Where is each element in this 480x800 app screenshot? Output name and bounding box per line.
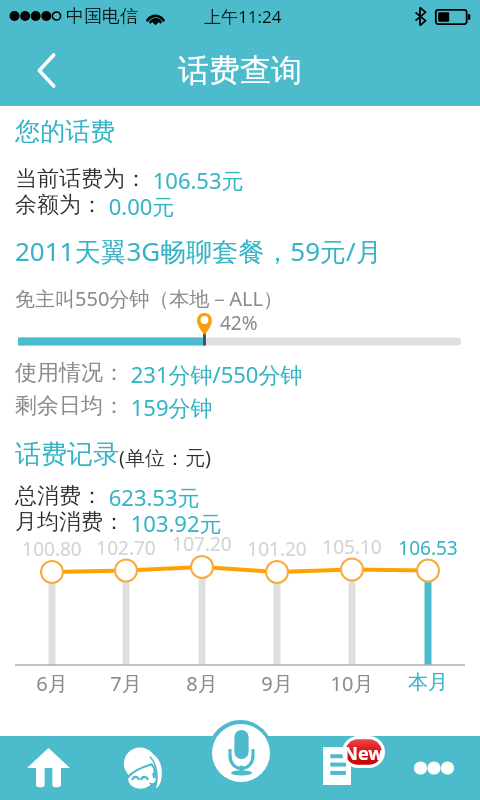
staticText: 使用情况： <box>15 359 125 387</box>
staticText: 10月 <box>312 670 392 697</box>
button[interactable]: Assistant <box>105 736 181 800</box>
staticText: 2011天翼3G畅聊套餐，59元/月 <box>15 233 382 269</box>
staticText: 107.20 <box>162 531 242 557</box>
staticText: 101.20 <box>237 536 317 562</box>
staticText: 105.10 <box>312 534 392 560</box>
staticText: 您的话费 <box>15 116 115 147</box>
staticText: 上午11:24 <box>204 5 282 28</box>
button[interactable]: Bills <box>305 736 389 800</box>
staticText: 6月 <box>12 670 92 697</box>
staticText: 余额为： <box>15 191 103 219</box>
staticText: 42% <box>220 310 258 336</box>
staticText: 106.53 <box>388 535 468 561</box>
staticText: 免主叫550分钟（本地－ALL） <box>15 285 284 312</box>
staticText: 103.92元 <box>125 508 222 538</box>
staticText: 总消费： <box>15 482 103 510</box>
staticText: 当前话费为： <box>15 165 147 193</box>
button[interactable]: Back <box>0 32 78 106</box>
button[interactable]: Home <box>10 736 86 800</box>
staticText: 剩余日均： <box>15 392 125 420</box>
staticText: 623.53元 <box>103 482 200 512</box>
button[interactable]: Voice assistant <box>208 720 273 785</box>
staticText: New <box>342 741 385 766</box>
staticText: 中国电信 <box>66 5 138 28</box>
staticText: 7月 <box>86 670 166 697</box>
staticText: 159分钟 <box>125 392 213 422</box>
staticText: 102.70 <box>86 535 166 561</box>
staticText: 话费查询 <box>178 51 302 90</box>
staticText: 0.00元 <box>103 191 175 221</box>
staticText: 9月 <box>237 670 317 697</box>
staticText: 8月 <box>162 670 242 697</box>
staticText: 月均消费： <box>15 508 125 536</box>
staticText: 231分钟/550分钟 <box>125 359 303 389</box>
staticText: (单位：元) <box>119 444 211 471</box>
staticText: 话费记录 <box>15 438 119 471</box>
staticText: 100.80 <box>12 536 92 562</box>
staticText: 106.53元 <box>147 165 244 195</box>
staticText: 本月 <box>388 670 468 695</box>
button[interactable]: More <box>395 736 470 800</box>
